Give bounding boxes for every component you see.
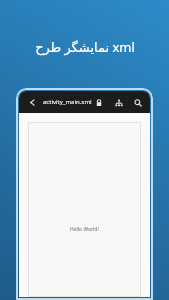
button[interactable]: Back xyxy=(25,95,39,109)
staticText: activity_main.xml xyxy=(43,98,92,106)
button[interactable]: Search xyxy=(132,96,144,109)
staticText: نمایشگر طرح xml xyxy=(35,38,135,56)
button[interactable]: Lock xyxy=(92,96,105,109)
staticText: Hello World! xyxy=(70,226,99,233)
button[interactable]: Hierarchy xyxy=(112,96,125,109)
